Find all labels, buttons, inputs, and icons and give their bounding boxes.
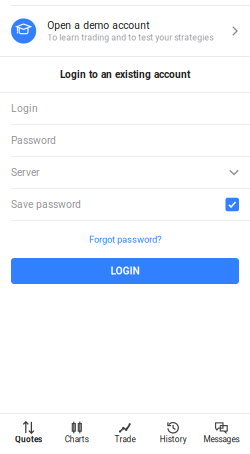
- staticText: Trade: [114, 435, 135, 444]
- button[interactable]: Messages: [197, 414, 245, 454]
- staticText: LOGIN: [110, 265, 139, 277]
- button[interactable]: History: [149, 414, 197, 454]
- staticText: Login: [11, 102, 38, 114]
- staticText: Forgot password?: [89, 234, 161, 245]
- staticText: Login to an existing account: [60, 69, 190, 80]
- button[interactable]: Trade: [101, 414, 149, 454]
- staticText: Messages: [203, 435, 239, 444]
- button[interactable]: LOGIN: [11, 258, 239, 284]
- button[interactable]: Forgot password?: [0, 221, 250, 258]
- staticText: Password: [11, 134, 56, 146]
- staticText: History: [160, 435, 187, 444]
- staticText: Server: [11, 166, 40, 178]
- staticText: Open a demo account: [47, 19, 149, 31]
- button[interactable]: Quotes: [4, 414, 53, 454]
- button[interactable]: Charts: [53, 414, 101, 454]
- staticText: Charts: [65, 435, 89, 444]
- button[interactable]: Open a demo account: [0, 6, 250, 56]
- staticText: To learn trading and to test your strate…: [47, 32, 213, 43]
- staticText: Save password: [11, 198, 81, 210]
- staticText: Quotes: [15, 435, 42, 444]
